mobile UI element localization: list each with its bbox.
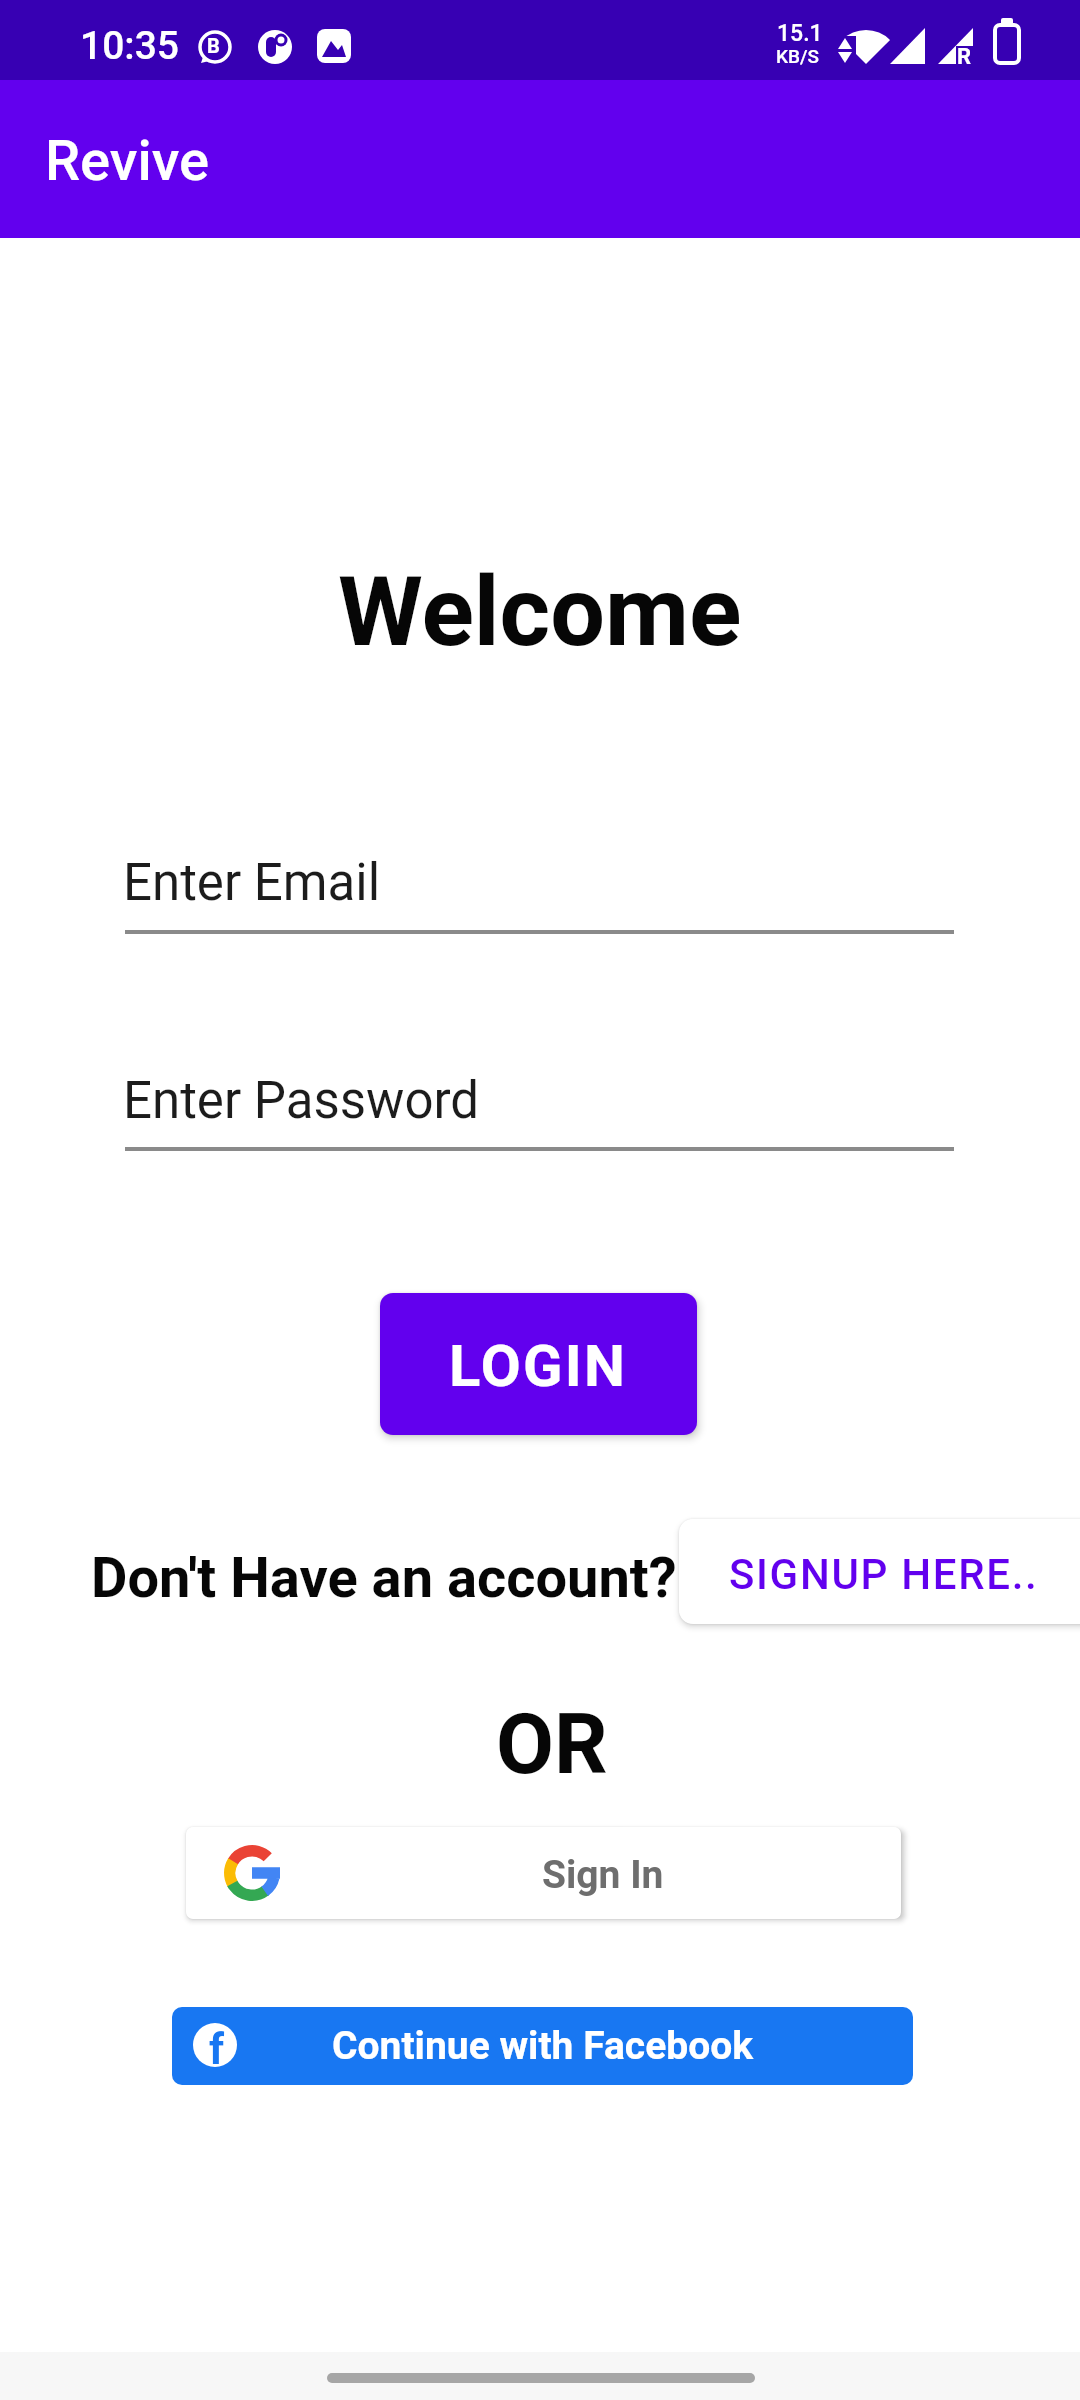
button[interactable]: f xyxy=(172,2007,913,2085)
button[interactable]: Sign In xyxy=(186,1827,901,1919)
staticText: LOGIN xyxy=(449,1332,628,1400)
staticText: 15.1 xyxy=(777,20,823,47)
staticText: f xyxy=(209,2025,225,2067)
staticText: SIGNUP HERE.. xyxy=(729,1550,1039,1599)
button[interactable]: SIGNUP HERE.. xyxy=(679,1519,1080,1624)
staticText: Revive xyxy=(45,128,210,194)
staticText: Welcome xyxy=(338,555,742,669)
button[interactable]: LOGIN xyxy=(380,1293,697,1435)
staticText: Enter Email xyxy=(123,853,381,913)
staticText: OR xyxy=(496,1695,608,1793)
staticText: Continue with Facebook xyxy=(332,2023,754,2069)
staticText: Don't Have an account? xyxy=(91,1545,677,1611)
staticText: Enter Password xyxy=(123,1071,480,1131)
staticText: 10:35 xyxy=(80,23,180,69)
staticText: B xyxy=(207,34,220,57)
staticText: R xyxy=(957,44,972,70)
staticText: KB/S xyxy=(776,45,819,67)
staticText: Sign In xyxy=(542,1852,664,1898)
